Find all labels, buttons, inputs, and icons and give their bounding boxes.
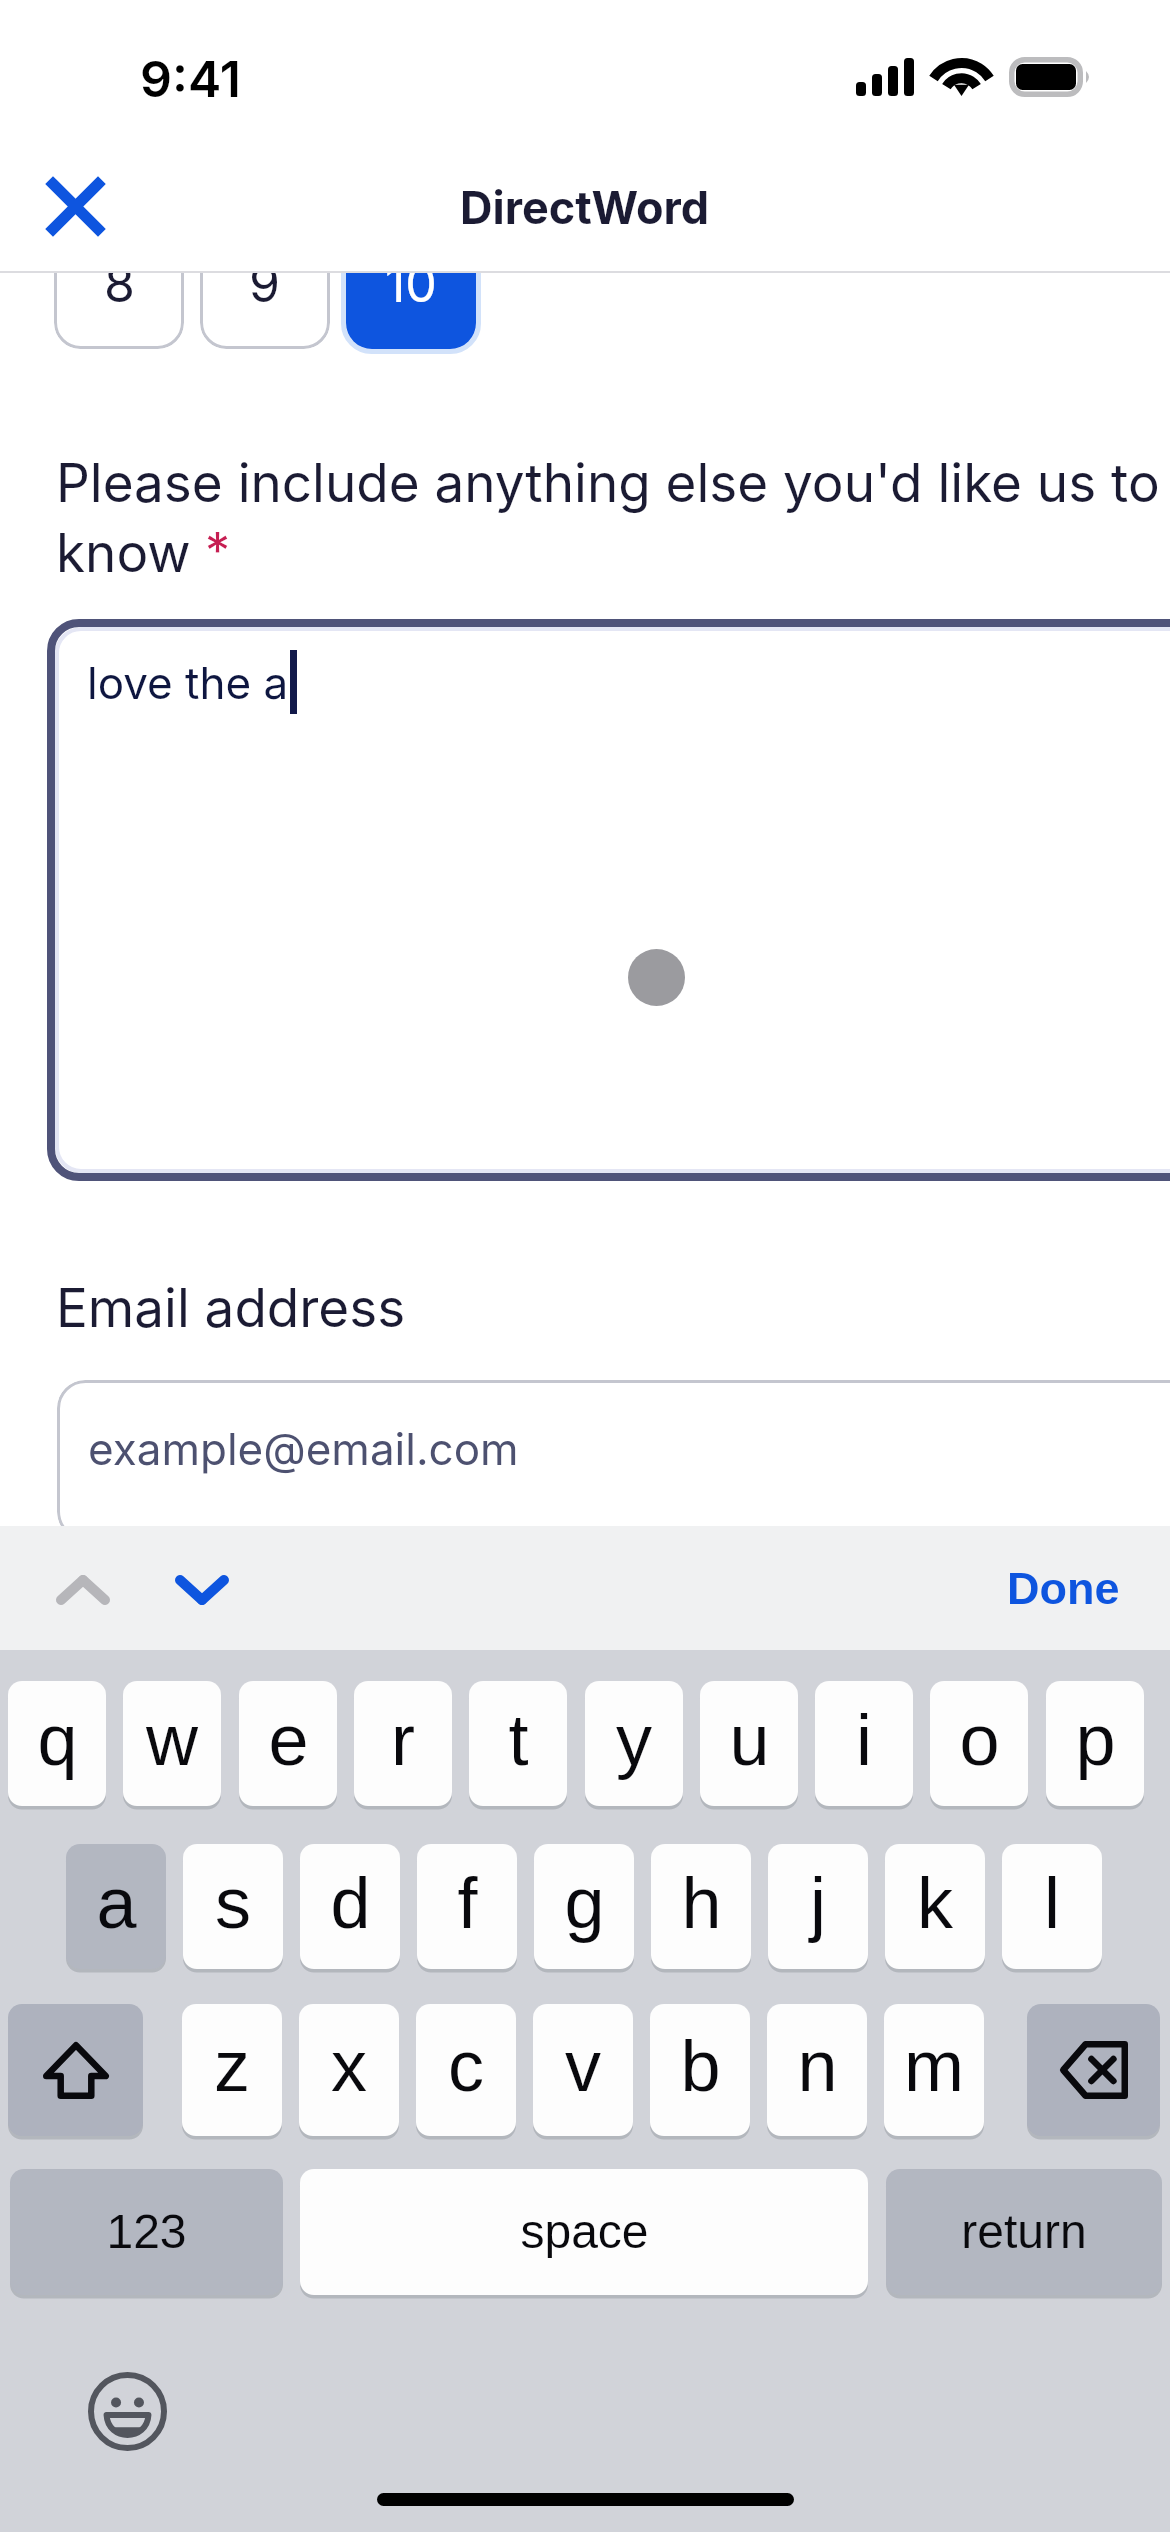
button[interactable]: Emoji keyboard xyxy=(88,2372,167,2451)
button[interactable]: w xyxy=(123,1681,221,1806)
staticText: 123 xyxy=(106,2205,187,2259)
staticText: t xyxy=(508,1700,529,1780)
button[interactable]: x xyxy=(299,2004,399,2136)
button[interactable]: p xyxy=(1046,1681,1144,1806)
staticText: 10 xyxy=(385,273,437,314)
button[interactable]: Done xyxy=(1007,1563,1120,1613)
staticText: x xyxy=(331,2026,367,2106)
staticText: Email address xyxy=(56,1276,406,1340)
staticText: example@email.com xyxy=(88,1422,519,1475)
button[interactable]: space xyxy=(300,2169,868,2295)
staticText: w xyxy=(146,1700,198,1780)
button[interactable]: r xyxy=(354,1681,452,1806)
staticText: * xyxy=(191,521,231,581)
button[interactable]: return xyxy=(886,2169,1162,2295)
staticText: g xyxy=(564,1863,605,1943)
button[interactable]: Shift xyxy=(8,2004,143,2136)
button[interactable]: l xyxy=(1002,1844,1102,1969)
staticText: o xyxy=(959,1700,1000,1780)
staticText: k xyxy=(917,1863,953,1943)
staticText: i xyxy=(856,1700,872,1780)
staticText: s xyxy=(215,1863,251,1943)
button[interactable]: k xyxy=(885,1844,985,1969)
button[interactable]: i xyxy=(815,1681,913,1806)
button[interactable]: 10 xyxy=(346,273,476,349)
staticText: y xyxy=(616,1700,652,1780)
button[interactable]: u xyxy=(700,1681,798,1806)
button[interactable]: n xyxy=(767,2004,867,2136)
button[interactable]: 9 xyxy=(200,273,330,349)
staticText: return xyxy=(961,2205,1087,2259)
staticText: p xyxy=(1075,1700,1116,1780)
staticText: Done xyxy=(1007,1563,1120,1613)
staticText: e xyxy=(268,1700,309,1780)
button[interactable]: 8 xyxy=(54,273,184,349)
button[interactable]: c xyxy=(416,2004,516,2136)
staticText: c xyxy=(448,2026,484,2106)
staticText: l xyxy=(1044,1863,1060,1943)
staticText: DirectWord xyxy=(460,180,710,234)
button[interactable]: z xyxy=(182,2004,282,2136)
staticText: b xyxy=(680,2026,721,2106)
button[interactable]: t xyxy=(469,1681,567,1806)
staticText: Please include anything else you'd like … xyxy=(56,451,1160,515)
button[interactable]: h xyxy=(651,1844,751,1969)
button[interactable]: y xyxy=(585,1681,683,1806)
button[interactable]: Backspace xyxy=(1027,2004,1160,2136)
staticText: m xyxy=(904,2026,964,2106)
button[interactable]: o xyxy=(930,1681,1028,1806)
button[interactable]: e xyxy=(239,1681,337,1806)
staticText: 9 xyxy=(249,273,281,314)
staticText: know xyxy=(56,521,191,585)
staticText: h xyxy=(681,1863,722,1943)
staticText: 8 xyxy=(104,273,135,314)
staticText: q xyxy=(37,1700,78,1780)
button[interactable]: s xyxy=(183,1844,283,1969)
staticText: d xyxy=(330,1863,371,1943)
button[interactable]: a xyxy=(66,1844,166,1969)
button[interactable]: Previous field xyxy=(28,1552,138,1628)
staticText: z xyxy=(214,2026,250,2106)
staticText: r xyxy=(391,1700,415,1780)
button[interactable]: v xyxy=(533,2004,633,2136)
button[interactable]: m xyxy=(884,2004,984,2136)
button[interactable]: example@email.com xyxy=(57,1380,1170,1526)
button[interactable]: g xyxy=(534,1844,634,1969)
staticText: space xyxy=(520,2205,649,2259)
button[interactable]: b xyxy=(650,2004,750,2136)
staticText: love the a xyxy=(87,656,289,709)
button[interactable]: Next field xyxy=(147,1552,257,1628)
button[interactable]: f xyxy=(417,1844,517,1969)
staticText: j xyxy=(810,1863,826,1943)
button[interactable]: 123 xyxy=(10,2169,283,2295)
button[interactable]: d xyxy=(300,1844,400,1969)
button[interactable]: Close xyxy=(29,160,122,253)
staticText: v xyxy=(565,2026,601,2106)
button[interactable]: love the a xyxy=(47,619,1170,1181)
button[interactable]: j xyxy=(768,1844,868,1969)
staticText: 9:41 xyxy=(140,49,241,109)
staticText: f xyxy=(457,1863,478,1943)
staticText: n xyxy=(797,2026,838,2106)
button[interactable]: q xyxy=(8,1681,106,1806)
staticText: u xyxy=(729,1700,770,1780)
staticText: a xyxy=(96,1863,137,1943)
